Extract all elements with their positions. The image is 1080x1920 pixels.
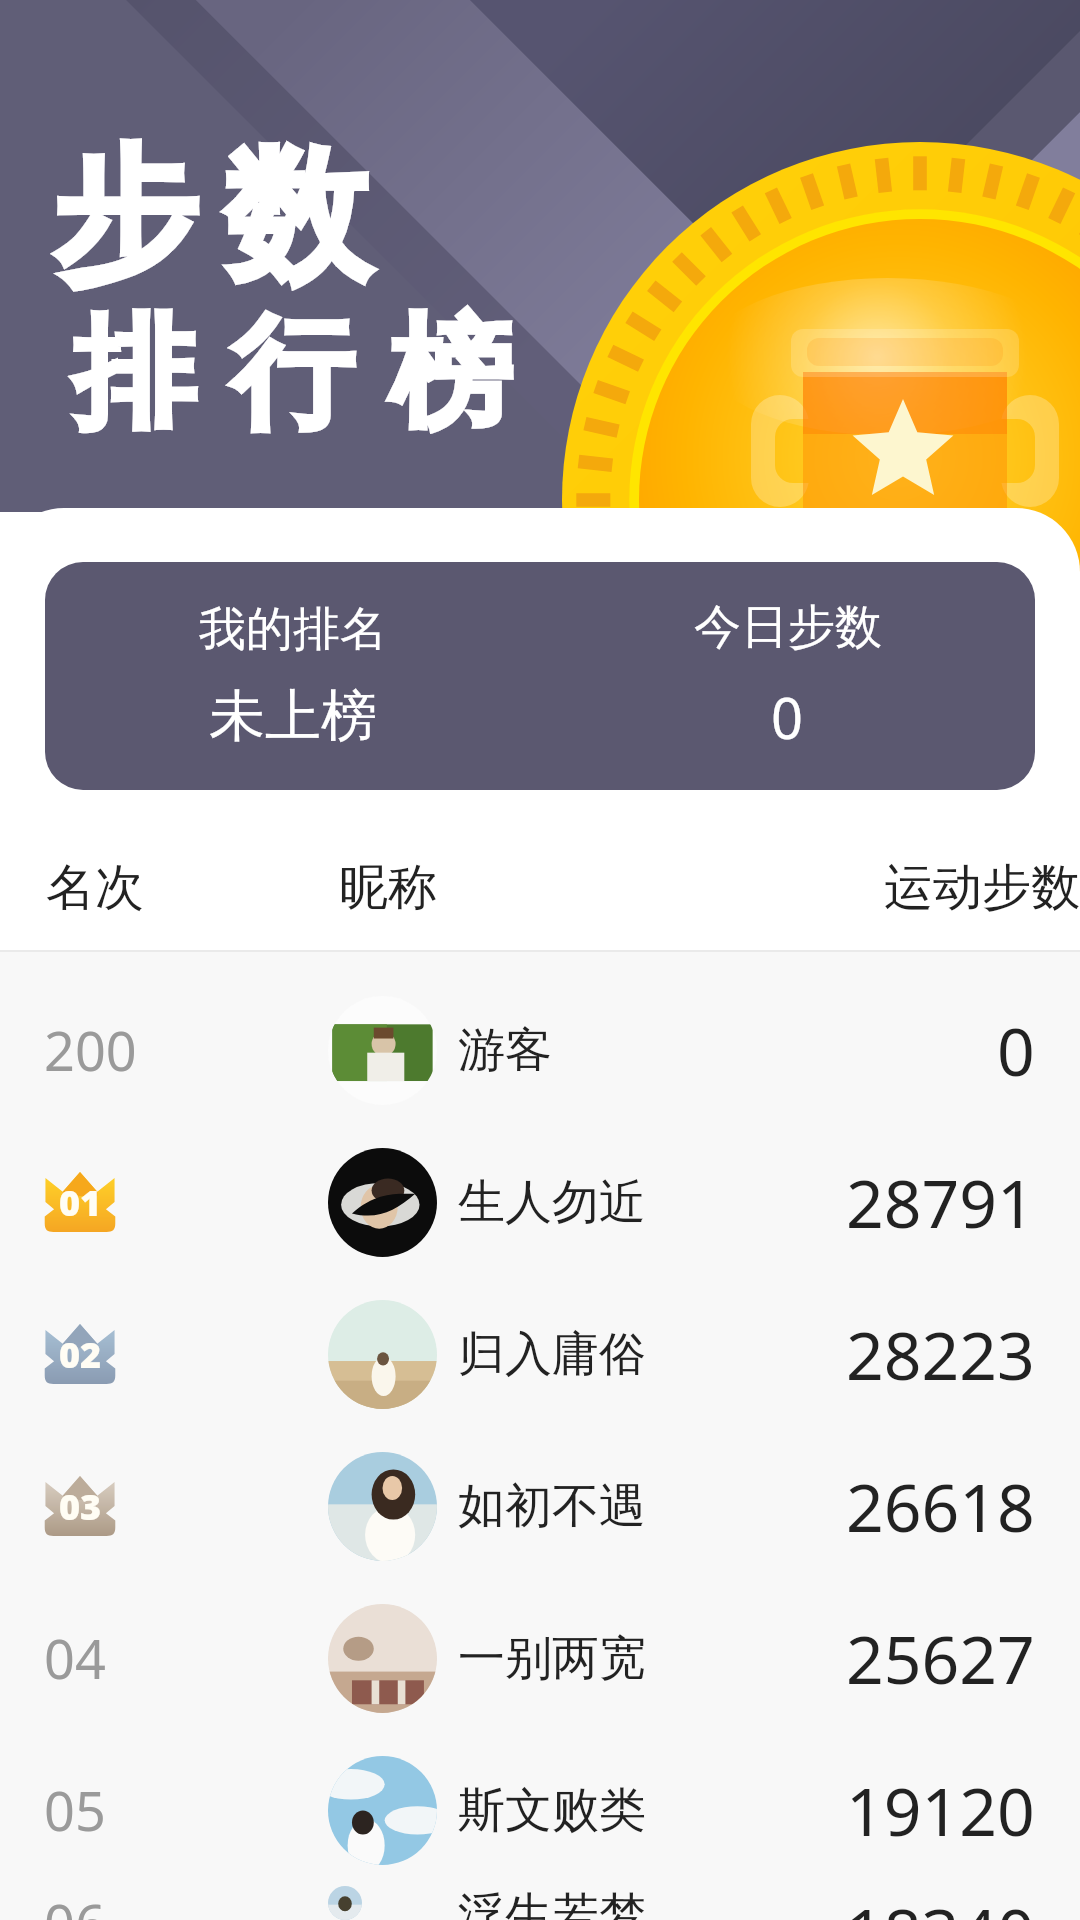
staticText: 如初不遇 xyxy=(458,1477,646,1536)
staticText: 步数 xyxy=(38,126,384,309)
staticText: 斯文败类 xyxy=(458,1781,646,1840)
button[interactable]: 06 xyxy=(0,1886,1080,1920)
staticText: 0 xyxy=(771,679,804,755)
staticText: 02 xyxy=(59,1330,102,1379)
button[interactable]: 05 xyxy=(0,1734,1080,1886)
staticText: 28791 xyxy=(846,1157,1035,1247)
staticText: 运动步数 xyxy=(884,857,1080,919)
staticText: 昵称 xyxy=(339,857,437,919)
staticText: 游客 xyxy=(458,1021,552,1080)
staticText: 一别两宽 xyxy=(458,1629,646,1688)
button[interactable]: 我的排名 xyxy=(45,562,1035,790)
staticText: 19120 xyxy=(846,1765,1035,1855)
button[interactable]: 02 xyxy=(0,1278,1080,1430)
staticText: 05 xyxy=(44,1773,106,1847)
staticText: 归入庸俗 xyxy=(458,1325,646,1384)
staticText: 28223 xyxy=(846,1309,1035,1399)
staticText: 我的排名 xyxy=(199,600,387,659)
staticText: 06 xyxy=(44,1886,106,1920)
staticText: 浮生若梦 xyxy=(458,1886,646,1920)
staticText: 今日步数 xyxy=(694,598,882,657)
staticText: 01 xyxy=(59,1178,102,1227)
button[interactable]: 04 xyxy=(0,1582,1080,1734)
button[interactable]: 03 xyxy=(0,1430,1080,1582)
staticText: 03 xyxy=(59,1482,102,1531)
staticText: 25627 xyxy=(846,1613,1035,1703)
staticText: 名次 xyxy=(46,857,144,919)
staticText: 04 xyxy=(44,1621,106,1695)
button[interactable]: 200 xyxy=(0,974,1080,1126)
staticText: 排行榜 xyxy=(55,298,529,452)
staticText: 0 xyxy=(997,1005,1035,1095)
staticText: 26618 xyxy=(846,1461,1035,1551)
staticText: 未上榜 xyxy=(209,681,377,752)
staticText: 200 xyxy=(44,1013,137,1087)
staticText: 18340 xyxy=(846,1886,1035,1920)
button[interactable]: 01 xyxy=(0,1126,1080,1278)
staticText: 生人勿近 xyxy=(458,1173,646,1232)
